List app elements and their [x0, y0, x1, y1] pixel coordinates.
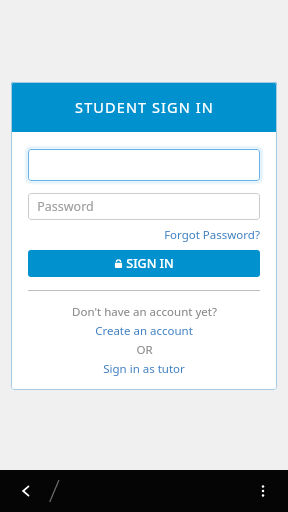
button[interactable]: Create an account: [95, 322, 193, 340]
button[interactable]: Back: [8, 473, 44, 509]
button[interactable]: [28, 149, 260, 181]
staticText: Create an account: [95, 323, 193, 339]
button[interactable]: Sign in as tutor: [103, 360, 185, 378]
staticText: Forgot Password?: [164, 227, 260, 243]
button[interactable]: Forgot Password?: [164, 225, 260, 245]
staticText: Don't have an account yet?: [72, 304, 217, 320]
staticText: SIGN IN: [126, 255, 174, 272]
button[interactable]: Recents: [38, 474, 72, 508]
button[interactable]: SIGN IN: [28, 250, 260, 277]
staticText: STUDENT SIGN IN: [75, 97, 214, 117]
button[interactable]: More options: [246, 474, 280, 508]
staticText: Sign in as tutor: [103, 361, 185, 377]
button[interactable]: Password: [28, 193, 260, 220]
staticText: OR: [136, 342, 153, 358]
staticText: Password: [37, 198, 94, 215]
